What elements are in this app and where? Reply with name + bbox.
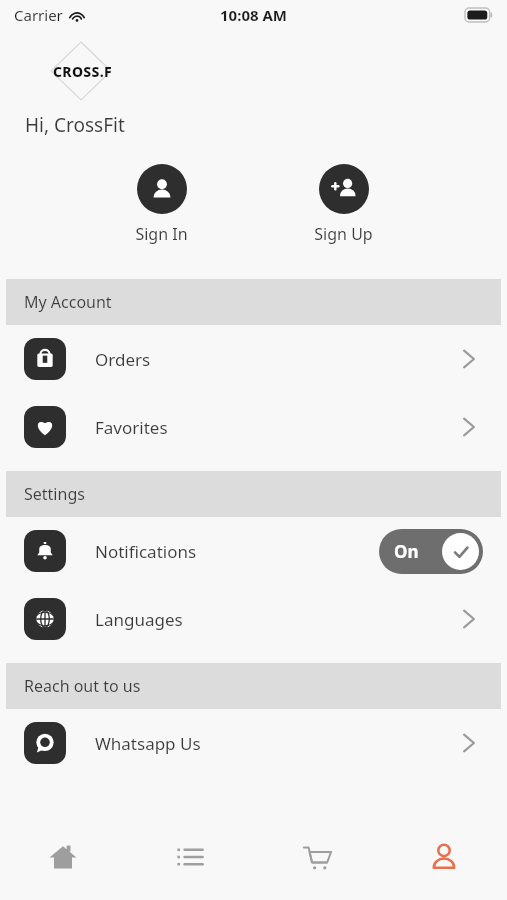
staticText: Carrier <box>14 5 63 25</box>
staticText: Notifications <box>95 540 379 563</box>
button[interactable]: Cart <box>253 825 380 900</box>
other: Open Whatsapp Us <box>462 732 476 754</box>
staticText: Sign In <box>135 223 188 245</box>
button[interactable]: Notifications on <box>379 529 483 574</box>
staticText: On <box>394 540 419 563</box>
staticText: Settings <box>24 483 85 505</box>
staticText: Hi, CrossFit <box>25 112 125 138</box>
button[interactable]: Whatsapp Us <box>0 709 507 777</box>
button[interactable]: Sign Up <box>288 164 398 259</box>
button[interactable]: Sign In <box>106 164 216 259</box>
staticText: CROSS.F <box>53 62 112 81</box>
button[interactable]: Favorites <box>0 393 507 461</box>
staticText: Sign Up <box>314 223 373 245</box>
button[interactable]: Notifications <box>0 517 507 585</box>
other: Open Orders <box>462 348 476 370</box>
staticText: Orders <box>95 348 462 371</box>
staticText: Favorites <box>95 416 462 439</box>
other: Open Languages <box>462 608 476 630</box>
staticText: 10:08 AM <box>220 5 287 25</box>
staticText: My Account <box>24 291 112 313</box>
button[interactable]: Account <box>380 825 507 900</box>
staticText: Languages <box>95 608 462 631</box>
staticText: Whatsapp Us <box>95 732 462 755</box>
other: Open Favorites <box>462 416 476 438</box>
button[interactable]: Categories <box>126 825 253 900</box>
button[interactable]: Languages <box>0 585 507 653</box>
staticText: Reach out to us <box>24 675 141 697</box>
button[interactable]: Home <box>0 825 126 900</box>
button[interactable]: Orders <box>0 325 507 393</box>
